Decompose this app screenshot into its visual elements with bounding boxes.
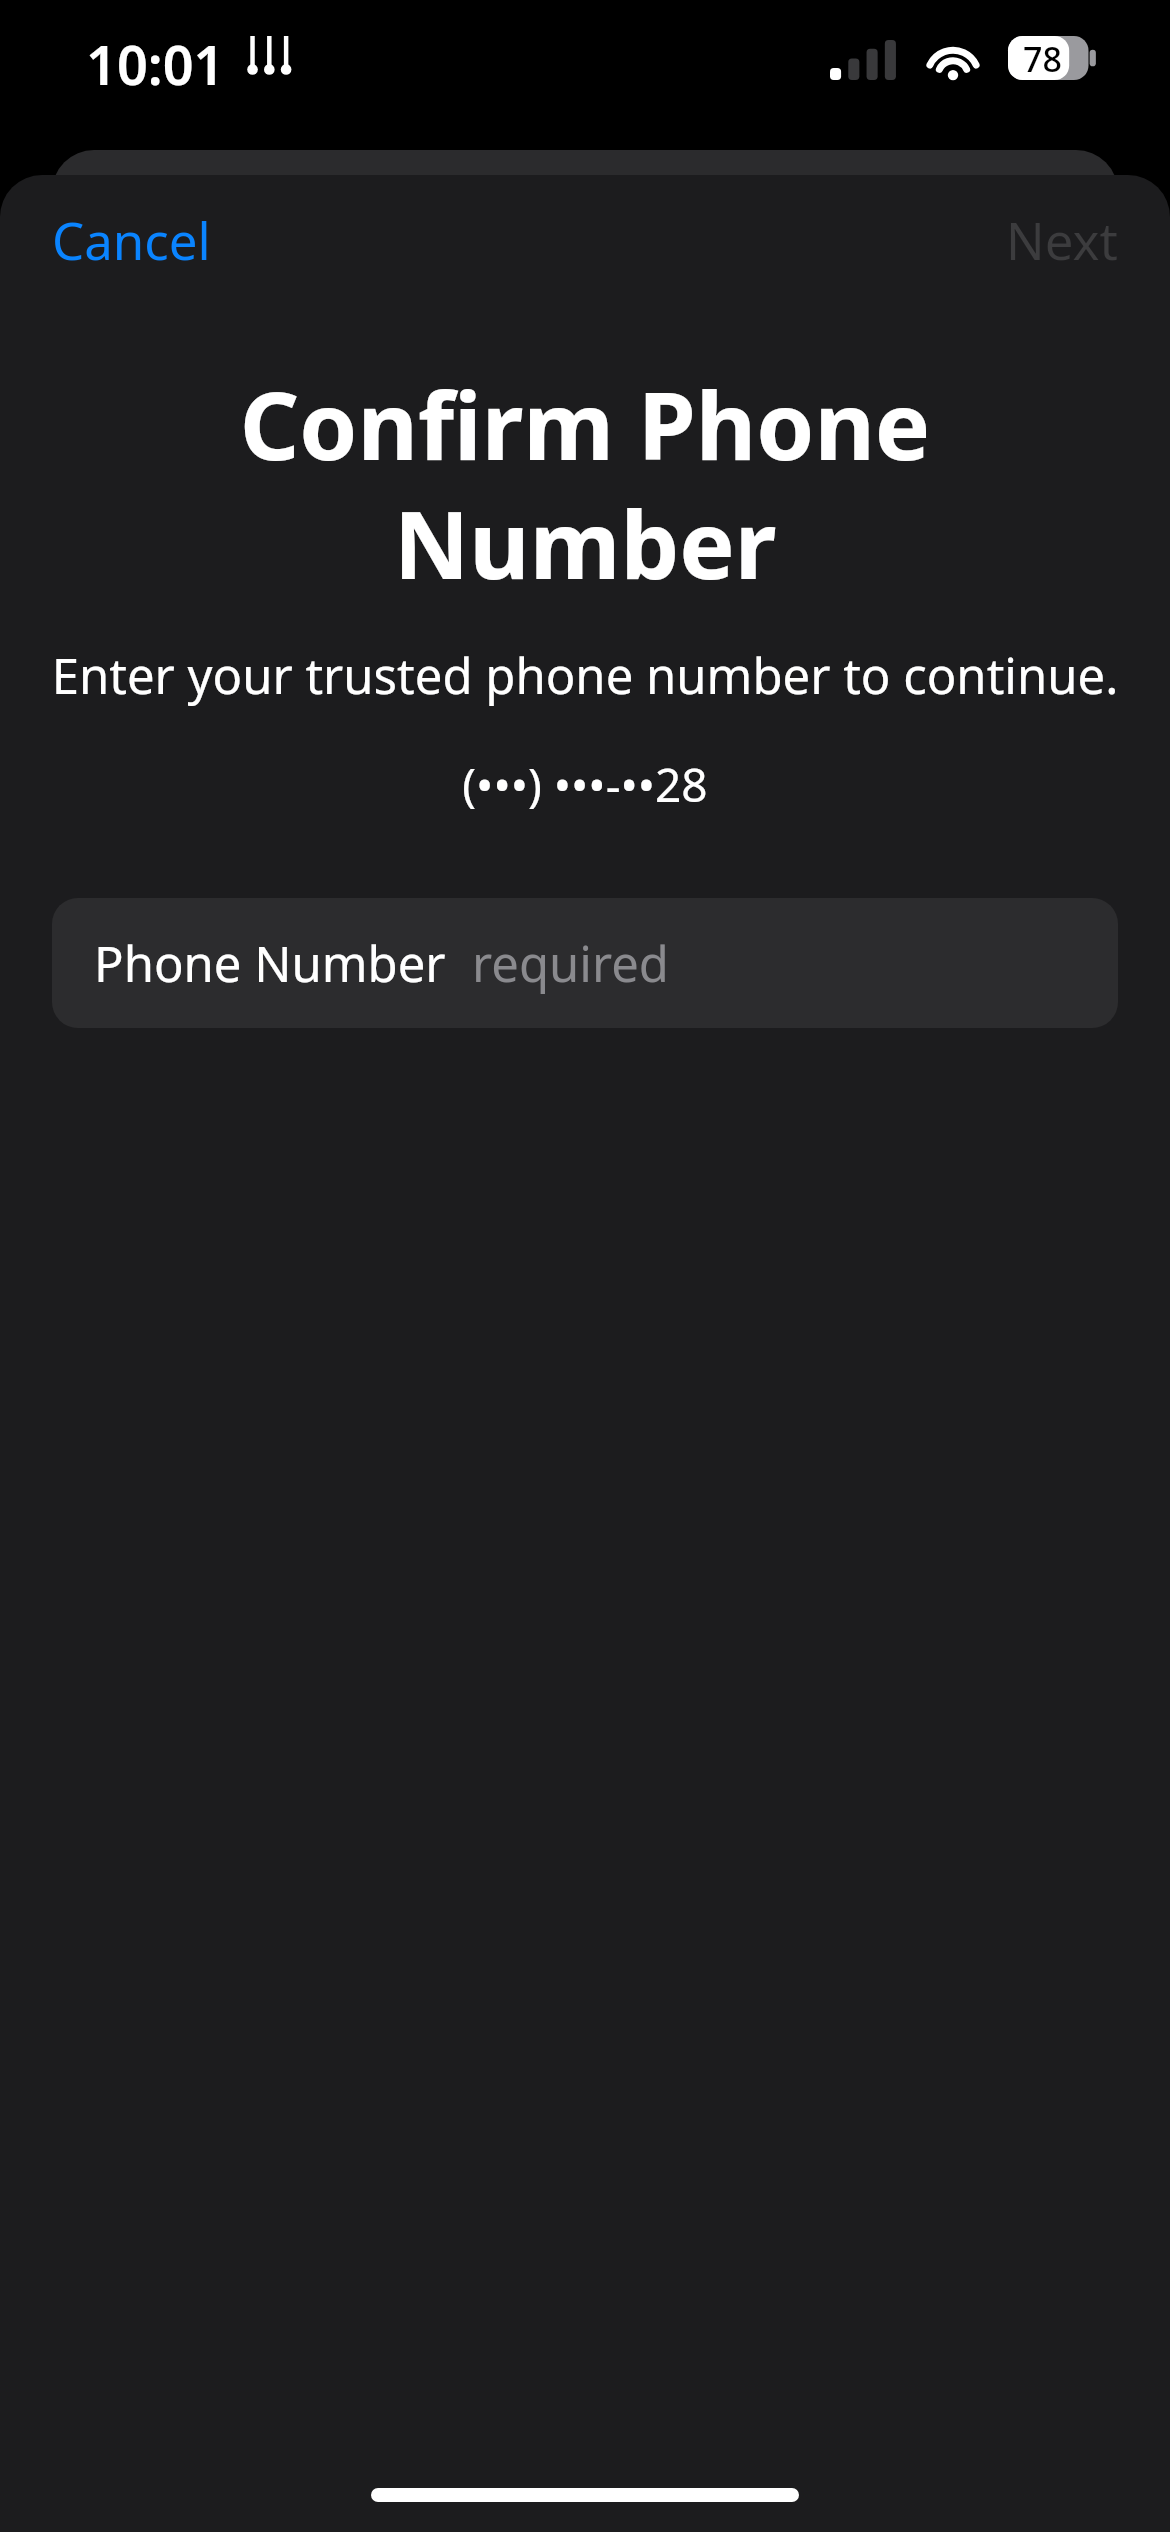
staticText: Confirm Phone Number [118, 361, 1052, 606]
button[interactable]: Cancel [26, 189, 237, 290]
staticText: Enter your trusted phone number to conti… [36, 642, 1134, 709]
staticText: Phone Number [94, 930, 446, 997]
button[interactable]: Next [980, 189, 1144, 290]
button[interactable]: Phone Number [52, 898, 1118, 1028]
staticText: Cancel [52, 205, 211, 274]
staticText: 10:01 [86, 27, 225, 101]
staticText: (•••) •••-••28 [0, 753, 1170, 816]
staticText: 78 [1023, 36, 1062, 80]
staticText: Next [1006, 205, 1118, 274]
staticText: required [472, 930, 669, 997]
